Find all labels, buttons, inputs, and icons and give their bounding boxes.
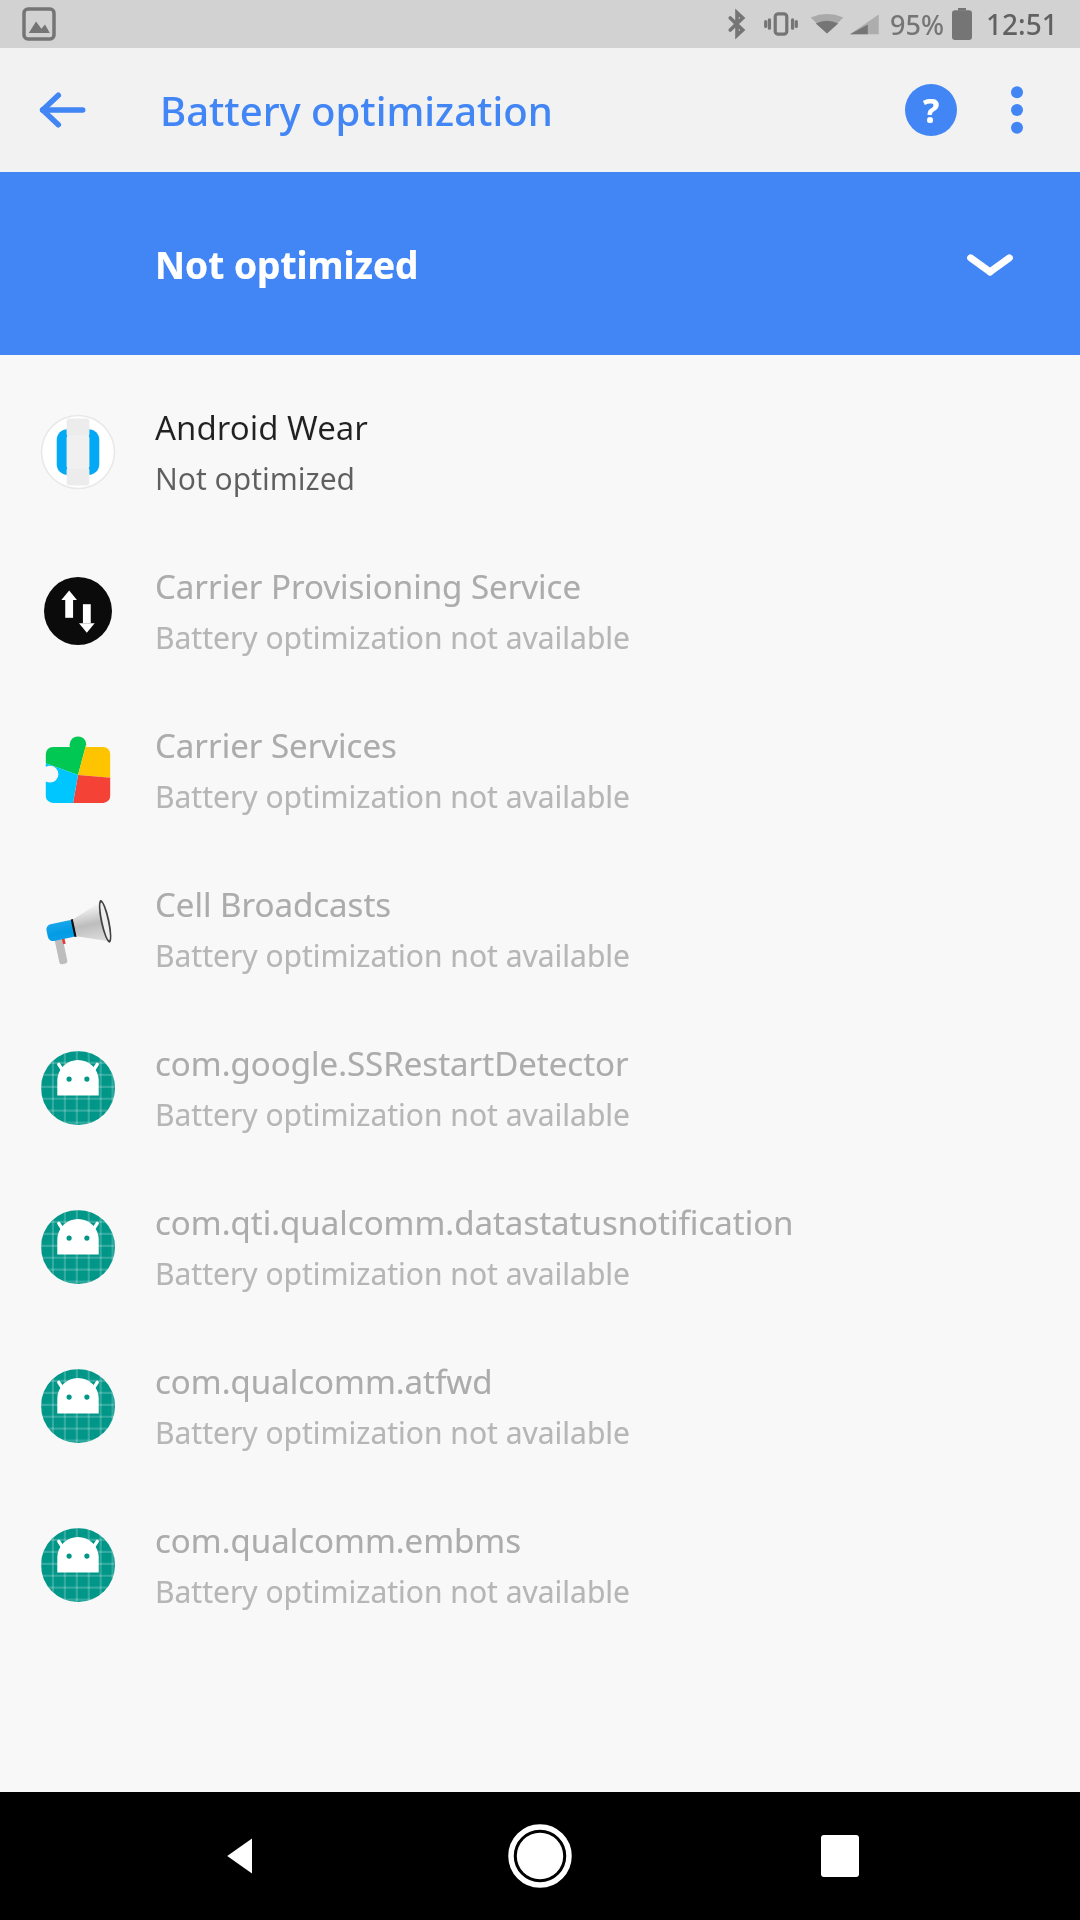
button[interactable]: Android Wear bbox=[0, 355, 1080, 531]
staticText: com.qti.qualcomm.datastatusnotification bbox=[155, 1200, 794, 1245]
button[interactable]: Recent apps bbox=[780, 1796, 900, 1916]
button[interactable]: Home bbox=[480, 1796, 600, 1916]
button[interactable]: com.qualcomm.atfwd bbox=[0, 1326, 1080, 1485]
staticText: 95% bbox=[890, 6, 944, 43]
staticText: com.qualcomm.embms bbox=[155, 1518, 522, 1563]
staticText: ? bbox=[923, 87, 940, 133]
button[interactable]: More options bbox=[974, 67, 1060, 153]
button[interactable]: Back bbox=[26, 74, 98, 146]
staticText: Battery optimization not available bbox=[155, 776, 630, 817]
button[interactable]: Not optimized bbox=[0, 172, 1080, 355]
staticText: Not optimized bbox=[155, 458, 356, 499]
staticText: Not optimized bbox=[155, 239, 419, 289]
staticText: com.qualcomm.atfwd bbox=[155, 1359, 493, 1404]
button[interactable]: Cell Broadcasts bbox=[0, 849, 1080, 1008]
staticText: Battery optimization not available bbox=[155, 1571, 630, 1612]
staticText: Carrier Provisioning Service bbox=[155, 564, 582, 609]
staticText: Battery optimization not available bbox=[155, 617, 630, 658]
staticText: Battery optimization bbox=[160, 83, 553, 137]
staticText: 12:51 bbox=[986, 5, 1058, 43]
staticText: Carrier Services bbox=[155, 723, 397, 768]
staticText: Battery optimization not available bbox=[155, 1094, 630, 1135]
button[interactable]: Carrier Provisioning Service bbox=[0, 531, 1080, 690]
staticText: Battery optimization not available bbox=[155, 1412, 630, 1453]
staticText: Battery optimization not available bbox=[155, 935, 630, 976]
button[interactable]: com.qti.qualcomm.datastatusnotification bbox=[0, 1167, 1080, 1326]
staticText: com.google.SSRestartDetector bbox=[155, 1041, 629, 1086]
button[interactable]: Help bbox=[888, 67, 974, 153]
staticText: Android Wear bbox=[155, 405, 368, 450]
button[interactable]: Carrier Services bbox=[0, 690, 1080, 849]
button[interactable]: Back bbox=[180, 1796, 300, 1916]
staticText: Cell Broadcasts bbox=[155, 882, 392, 927]
staticText: Battery optimization not available bbox=[155, 1253, 630, 1294]
button[interactable]: com.google.SSRestartDetector bbox=[0, 1008, 1080, 1167]
button[interactable]: com.qualcomm.embms bbox=[0, 1485, 1080, 1644]
